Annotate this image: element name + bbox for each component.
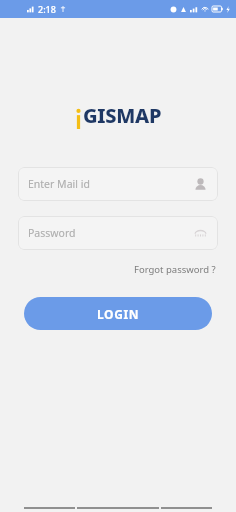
staticText: Enter Mail id [28, 177, 193, 191]
staticText: LOGIN [97, 306, 140, 322]
button[interactable]: LOGIN [24, 297, 212, 330]
other: Show password [193, 226, 208, 241]
button[interactable]: Forgot password ? [132, 260, 218, 279]
staticText: Password [28, 226, 193, 240]
staticText: Forgot password ? [134, 263, 216, 276]
staticText: 2:18 [38, 3, 56, 15]
button[interactable]: Password [18, 216, 218, 250]
staticText: GISMAP [83, 102, 162, 129]
other: Account [193, 177, 208, 192]
button[interactable]: Enter Mail id [18, 167, 218, 201]
